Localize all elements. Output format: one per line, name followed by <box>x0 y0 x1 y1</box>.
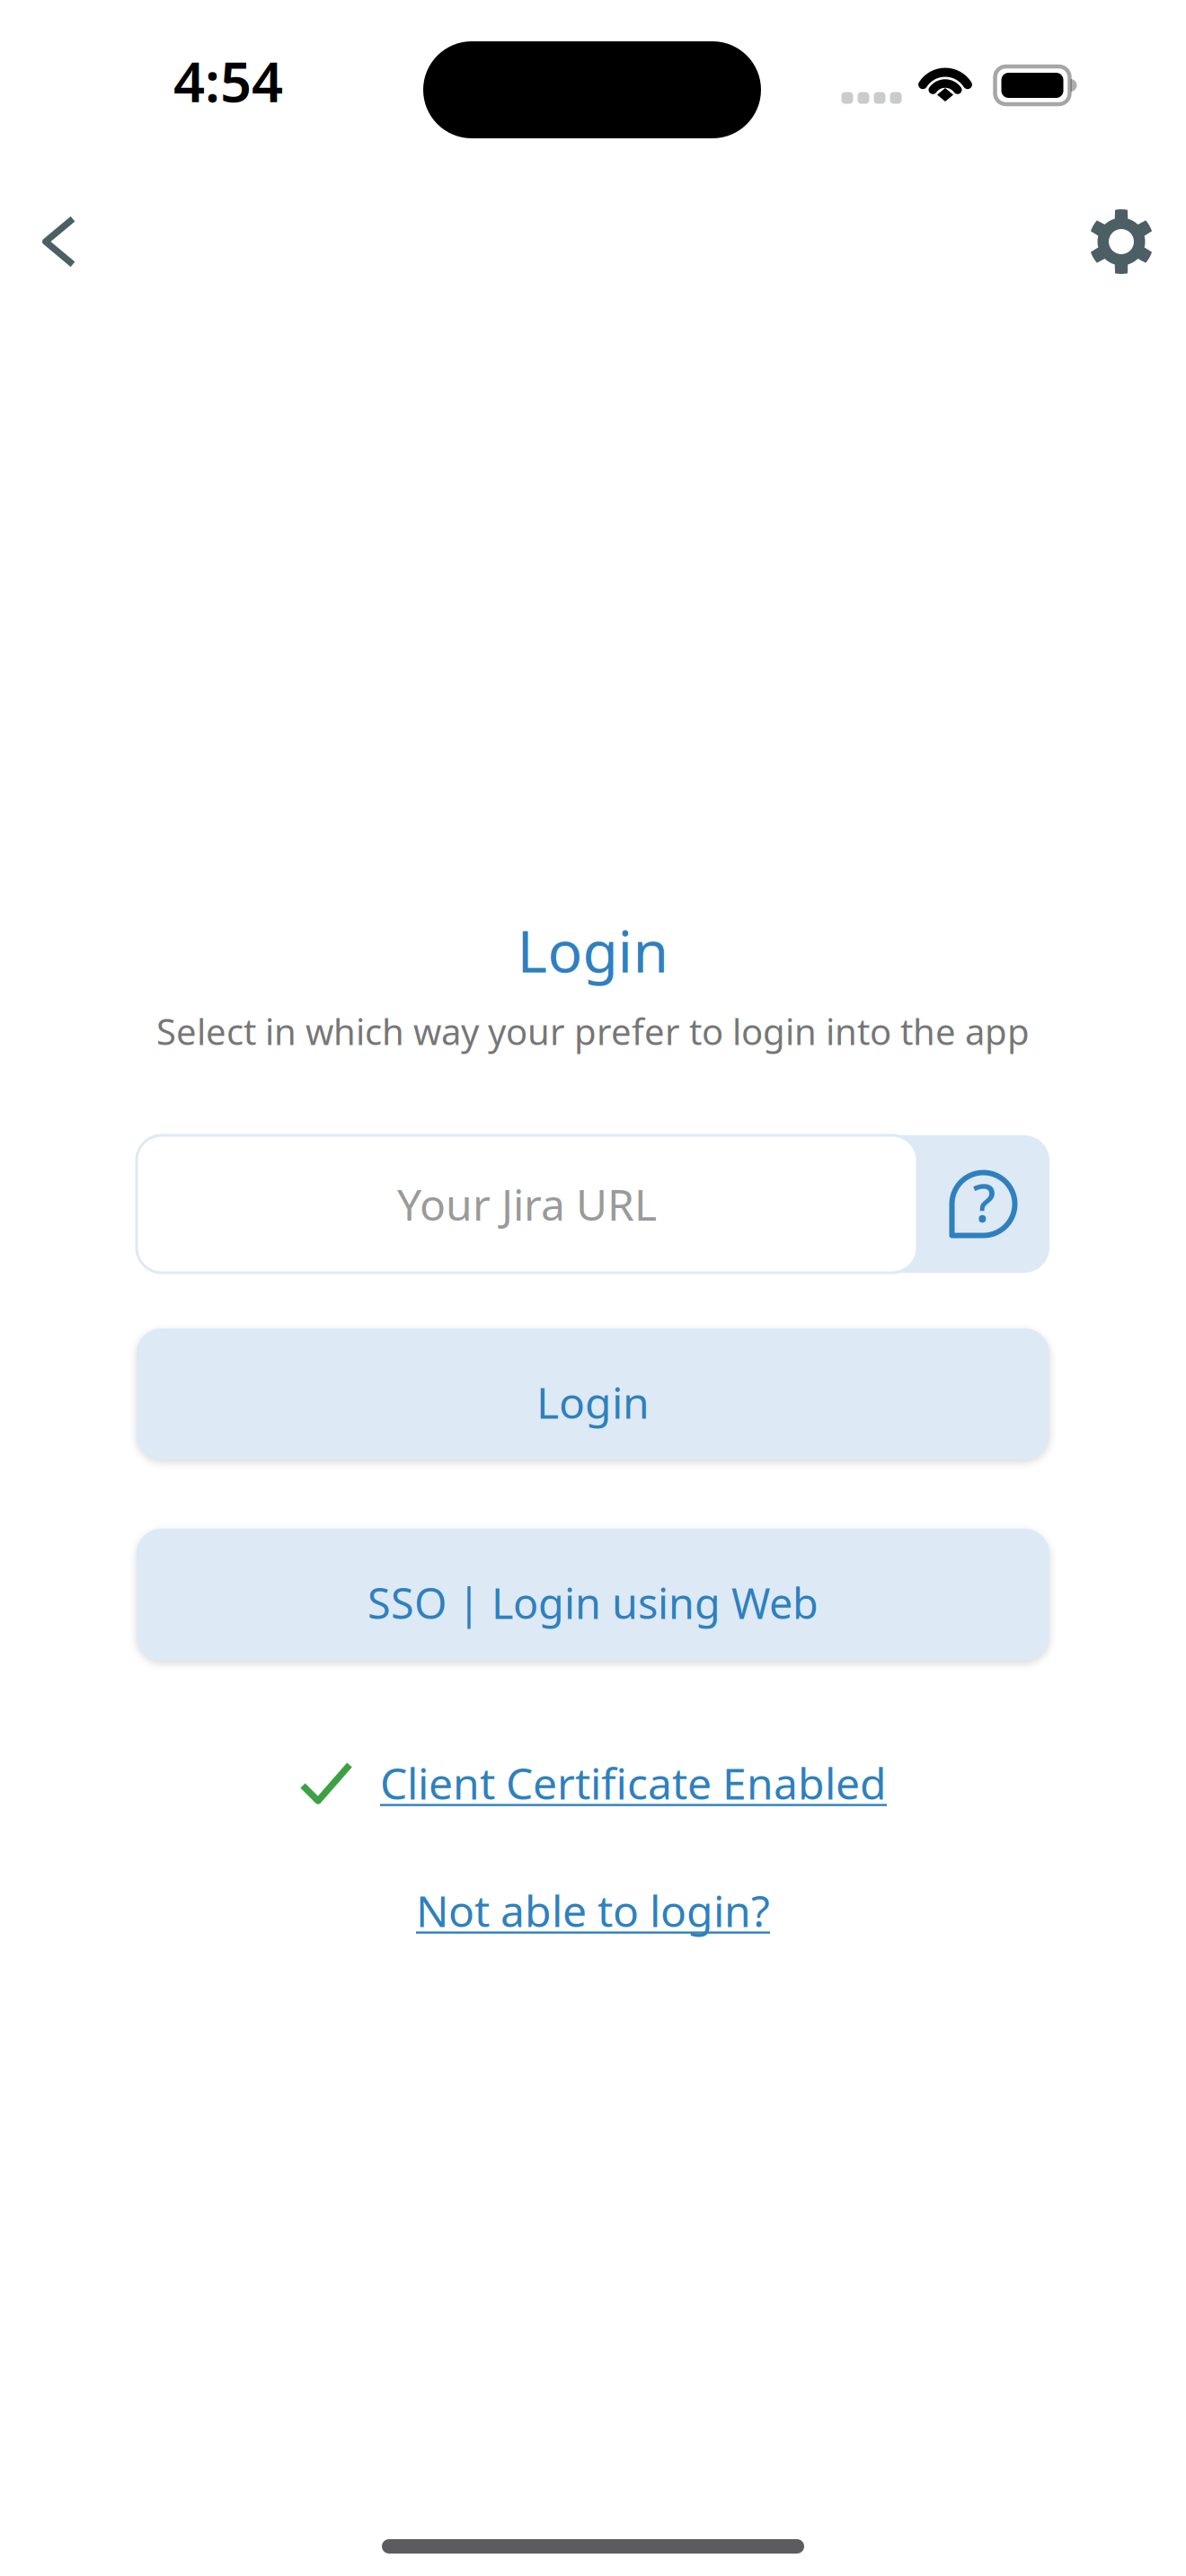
staticText: Login <box>517 912 669 988</box>
staticText: 4:54 <box>173 44 283 117</box>
staticText: Not able to login? <box>416 1882 770 1939</box>
button[interactable]: Not able to login? <box>416 1875 770 1946</box>
staticText: Your Jira URL <box>397 1175 657 1233</box>
staticText: Login <box>536 1373 650 1431</box>
button[interactable]: Login <box>137 1328 1049 1460</box>
button[interactable]: SSO | Login using Web <box>137 1529 1049 1661</box>
staticText: Select in which way your prefer to login… <box>156 1007 1030 1055</box>
staticText: SSO | Login using Web <box>367 1575 819 1631</box>
button[interactable]: Client Certificate Enabled <box>299 1747 887 1819</box>
button[interactable]: Help <box>917 1135 1049 1273</box>
button[interactable]: Settings <box>1071 191 1172 292</box>
staticText: ? <box>973 1168 996 1236</box>
staticText: Client Certificate Enabled <box>380 1754 887 1811</box>
button[interactable]: Back <box>11 193 108 290</box>
